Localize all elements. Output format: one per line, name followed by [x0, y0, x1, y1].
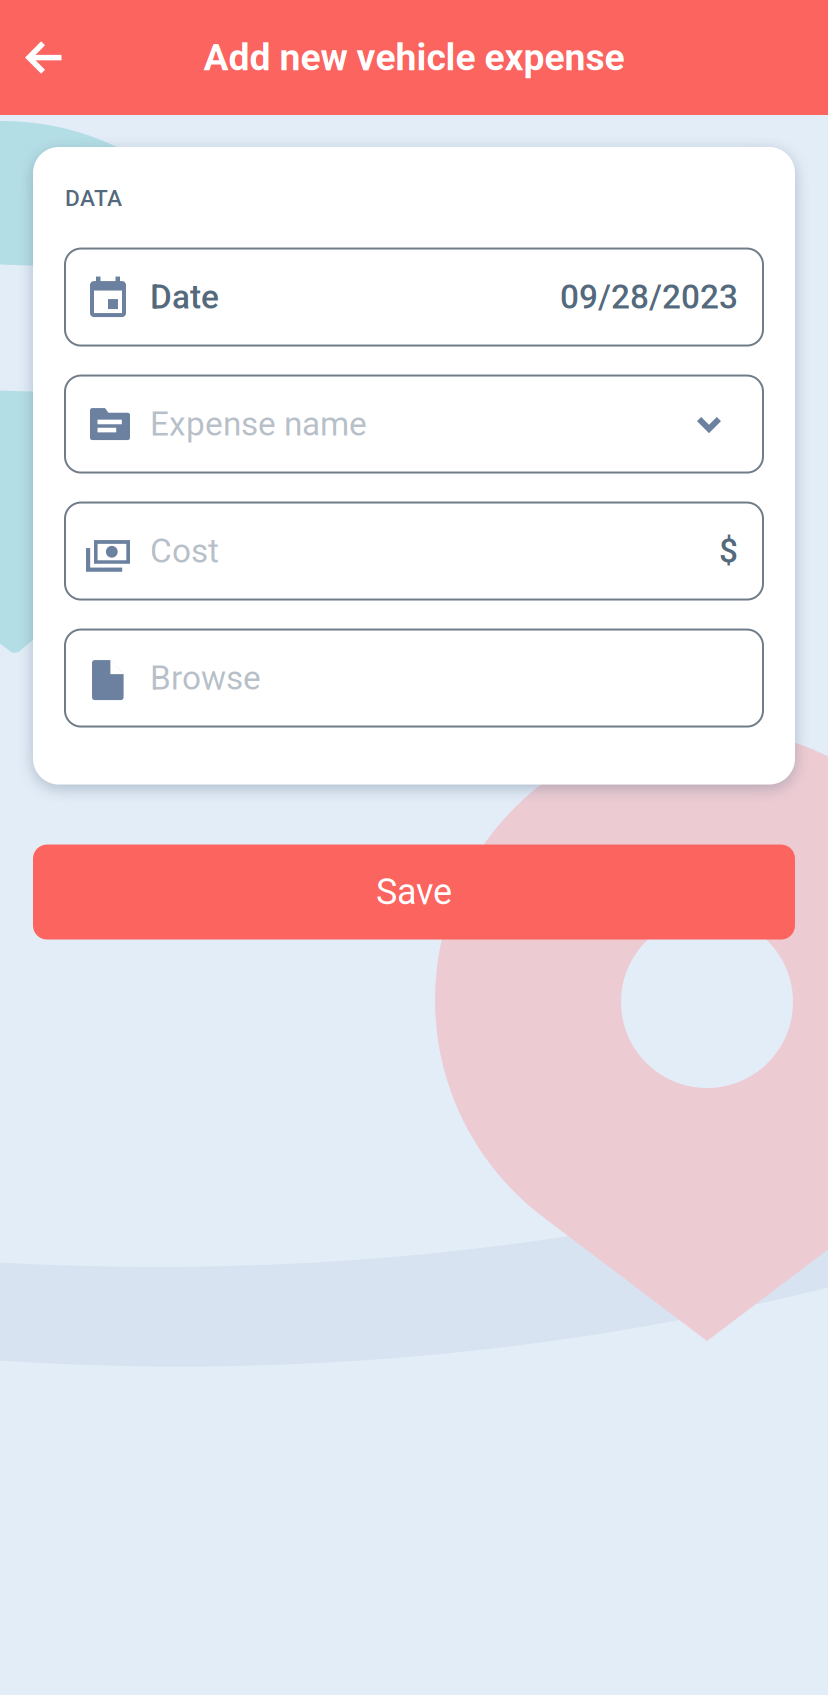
staticText: Expense name — [150, 404, 367, 444]
button[interactable]: Expense name — [65, 376, 763, 473]
staticText: Save — [376, 871, 452, 913]
button[interactable]: Save — [33, 845, 795, 940]
staticText: 09/28/2023 — [560, 277, 738, 317]
button[interactable]: Date — [65, 249, 763, 346]
staticText: Browse — [150, 658, 261, 698]
staticText: DATA — [65, 185, 122, 212]
staticText: $ — [719, 531, 738, 571]
staticText: Add new vehicle expense — [203, 36, 624, 79]
staticText: Cost — [150, 531, 219, 571]
staticText: Date — [150, 277, 219, 317]
button[interactable]: Cost — [65, 503, 763, 600]
button[interactable]: Browse — [65, 630, 763, 727]
button[interactable]: Back — [0, 0, 86, 115]
